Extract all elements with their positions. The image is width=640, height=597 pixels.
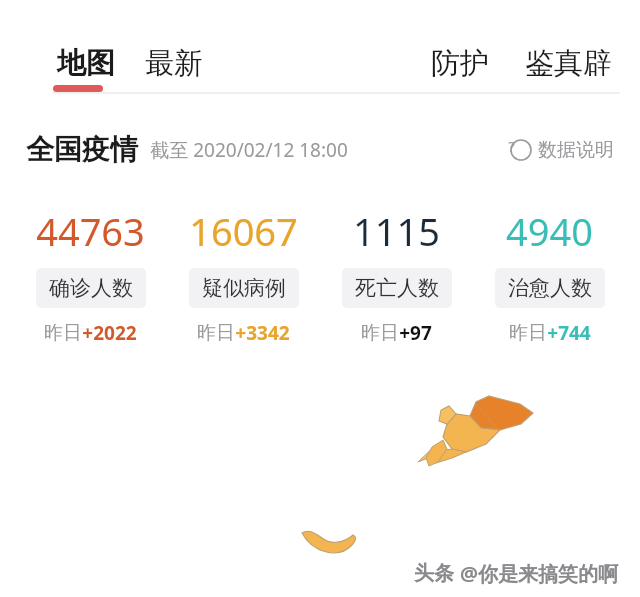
staticText: 昨日 xyxy=(197,321,235,345)
staticText: 地图 xyxy=(57,45,115,82)
button[interactable]: 最新 xyxy=(141,37,207,90)
button[interactable]: 16067 xyxy=(167,205,320,346)
staticText: 治愈人数 xyxy=(508,275,592,301)
button[interactable]: 地图 xyxy=(53,37,119,90)
staticText: 头条 xyxy=(414,561,454,586)
button[interactable]: 防护 xyxy=(427,37,493,90)
staticText: 昨日 xyxy=(509,321,547,345)
staticText: 昨日 xyxy=(361,321,399,345)
staticText: 最新 xyxy=(145,45,203,82)
staticText: 确诊人数 xyxy=(49,275,133,301)
button[interactable]: 数据说明 xyxy=(506,134,618,166)
staticText: +744 xyxy=(547,320,591,346)
staticText: 1115 xyxy=(353,205,440,257)
staticText: 死亡人数 xyxy=(355,275,439,301)
staticText: 44763 xyxy=(36,205,145,257)
staticText: ? xyxy=(508,136,515,156)
staticText: 16067 xyxy=(189,205,298,257)
button[interactable]: 鉴真辟 xyxy=(521,37,616,90)
staticText: 鉴真辟 xyxy=(525,45,612,82)
staticText: 防护 xyxy=(431,45,489,82)
staticText: 截至 2020/02/12 18:00 xyxy=(150,137,348,163)
button[interactable]: 1115 xyxy=(320,205,473,346)
staticText: +2022 xyxy=(82,320,137,346)
staticText: +97 xyxy=(399,320,432,346)
button[interactable]: 4940 xyxy=(473,205,626,346)
staticText: @你是来搞笑的啊 xyxy=(460,560,618,587)
button[interactable]: 44763 xyxy=(14,205,167,346)
staticText: 昨日 xyxy=(44,321,82,345)
staticText: 疑似病例 xyxy=(202,275,286,301)
staticText: +3342 xyxy=(235,320,290,346)
staticText: 4940 xyxy=(506,205,593,257)
staticText: 数据说明 xyxy=(538,138,614,162)
staticText: 全国疫情 xyxy=(26,132,138,167)
